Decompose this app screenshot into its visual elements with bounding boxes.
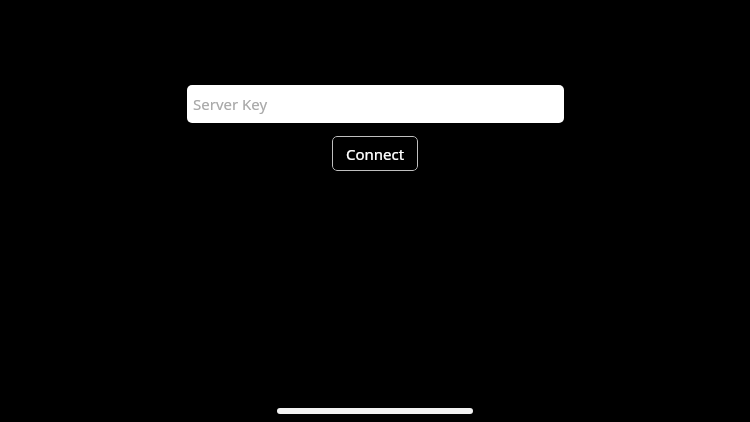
staticText: Connect xyxy=(346,144,405,164)
staticText: Server Key xyxy=(193,94,268,114)
other: Home xyxy=(277,408,473,414)
button[interactable]: Connect xyxy=(332,136,418,171)
button[interactable]: Server Key xyxy=(187,85,564,123)
